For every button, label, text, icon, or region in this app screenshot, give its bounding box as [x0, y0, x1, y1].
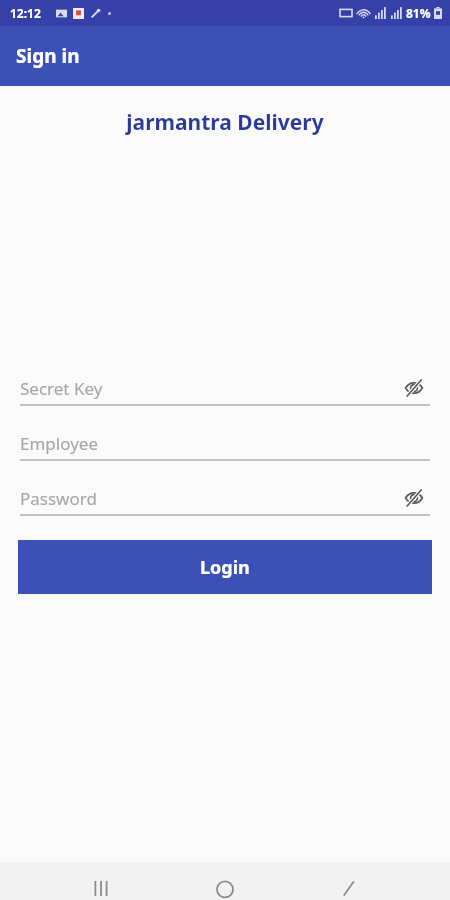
button[interactable]: Login — [18, 540, 432, 594]
button[interactable]: Home — [202, 868, 248, 900]
button[interactable]: Recent apps — [78, 868, 124, 900]
staticText: Login — [200, 555, 250, 580]
button[interactable]: Back — [326, 868, 372, 900]
staticText: jarmantra Delivery — [0, 108, 450, 137]
staticText: Password — [20, 487, 97, 510]
button[interactable]: Toggle password visibility — [398, 482, 430, 514]
staticText: 12:12 — [10, 5, 41, 21]
button[interactable]: Toggle secret key visibility — [398, 372, 430, 404]
staticText: Sign in — [16, 43, 80, 69]
staticText: Employee — [20, 432, 98, 455]
staticText: 81% — [406, 5, 431, 21]
staticText: Secret Key — [20, 377, 103, 400]
